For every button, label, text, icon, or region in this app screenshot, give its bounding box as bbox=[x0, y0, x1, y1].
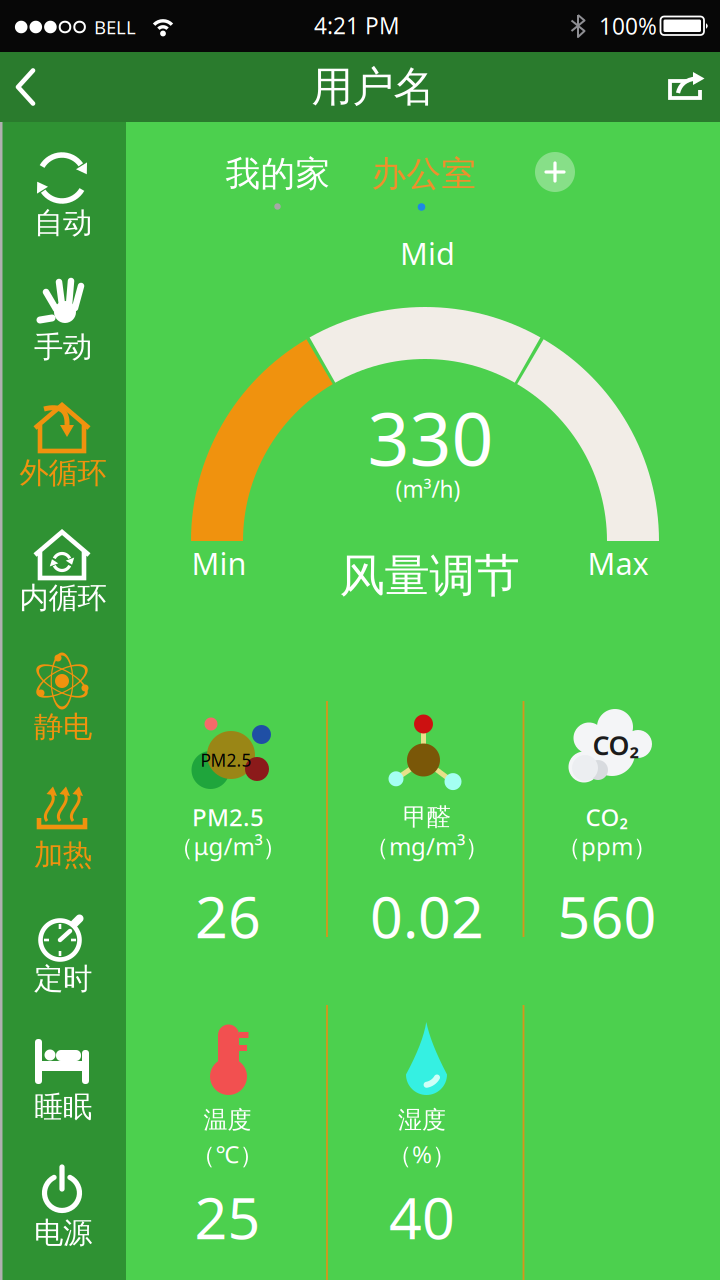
staticText: 温度 bbox=[203, 1105, 251, 1135]
staticText: 用户名 bbox=[311, 62, 434, 112]
staticText: CO₂ bbox=[585, 801, 628, 833]
staticText: 定时 bbox=[34, 961, 92, 997]
staticText: PM2.5 bbox=[200, 748, 251, 771]
staticText: （μg/m³） bbox=[169, 830, 286, 862]
button[interactable]: 电源 bbox=[0, 1152, 126, 1253]
button[interactable]: 我的家 bbox=[218, 150, 338, 198]
button[interactable]: 定时 bbox=[0, 900, 126, 999]
button[interactable]: 睡眠 bbox=[0, 1022, 126, 1127]
staticText: 电源 bbox=[34, 1215, 92, 1251]
staticText: 风量调节 bbox=[339, 548, 519, 604]
button[interactable]: Back bbox=[2, 54, 50, 118]
staticText: 湿度 bbox=[398, 1105, 446, 1135]
staticText: 自动 bbox=[34, 205, 92, 241]
button[interactable]: Share bbox=[665, 72, 707, 102]
staticText: PM2.5 bbox=[192, 801, 264, 833]
staticText: 甲醛 bbox=[403, 802, 451, 832]
staticText: 100% bbox=[599, 11, 657, 41]
button[interactable]: 内循环 bbox=[0, 520, 126, 618]
staticText: 外循环 bbox=[19, 455, 106, 491]
staticText: 4:21 PM bbox=[314, 10, 400, 40]
staticText: 0.02 bbox=[370, 878, 484, 954]
staticText: 睡眠 bbox=[34, 1089, 92, 1125]
staticText: （℃） bbox=[191, 1138, 263, 1170]
button[interactable]: Add room bbox=[535, 152, 575, 192]
staticText: CO₂ bbox=[592, 727, 639, 763]
button[interactable]: 加热 bbox=[0, 770, 126, 875]
staticText: 手动 bbox=[34, 329, 92, 365]
staticText: 静电 bbox=[34, 709, 92, 745]
staticText: 560 bbox=[557, 878, 656, 954]
staticText: 40 bbox=[389, 1179, 455, 1255]
staticText: 我的家 bbox=[225, 153, 330, 195]
staticText: 加热 bbox=[34, 837, 92, 873]
staticText: BELL bbox=[94, 15, 136, 39]
staticText: （%） bbox=[388, 1138, 456, 1170]
staticText: (m³/h) bbox=[395, 474, 460, 504]
staticText: （ppm） bbox=[557, 830, 657, 862]
staticText: 26 bbox=[195, 878, 261, 954]
staticText: 办公室 bbox=[371, 153, 476, 195]
staticText: 25 bbox=[194, 1179, 260, 1255]
staticText: Max bbox=[587, 543, 648, 583]
button[interactable]: 手动 bbox=[0, 267, 126, 367]
staticText: Min bbox=[191, 543, 246, 583]
staticText: （mg/m³） bbox=[365, 830, 489, 862]
staticText: 330 bbox=[367, 389, 493, 486]
button[interactable]: 办公室 bbox=[364, 150, 484, 198]
button[interactable]: 外循环 bbox=[0, 393, 126, 493]
staticText: 内循环 bbox=[19, 580, 106, 616]
button[interactable]: 自动 bbox=[0, 142, 126, 243]
staticText: Mid bbox=[400, 233, 455, 273]
button[interactable]: 静电 bbox=[0, 645, 126, 747]
